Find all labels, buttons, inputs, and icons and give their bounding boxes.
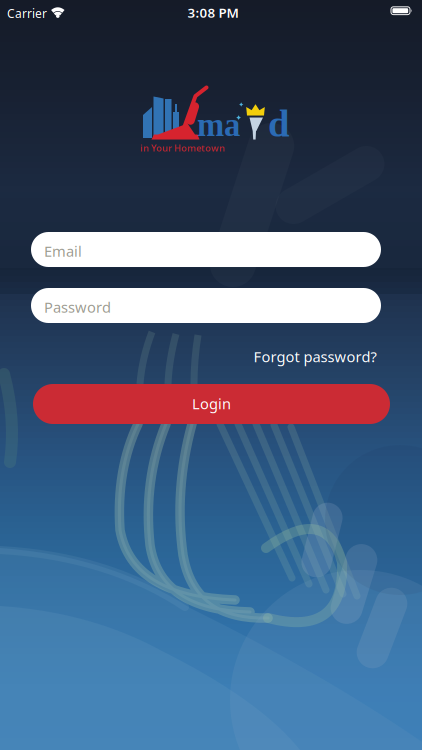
textField[interactable]: Email xyxy=(44,241,381,261)
button[interactable]: Login xyxy=(33,384,390,424)
staticText: Email xyxy=(44,241,82,261)
staticText: 3:08 PM xyxy=(187,4,238,21)
staticText: Password xyxy=(44,297,111,317)
textField[interactable]: Password xyxy=(44,297,381,317)
staticText: in Your Hometown xyxy=(140,142,225,154)
staticText: Forgot password? xyxy=(253,347,376,366)
staticText: d xyxy=(268,102,290,145)
staticText: ma xyxy=(197,107,240,143)
staticText: Login xyxy=(192,394,231,413)
button[interactable]: Forgot password? xyxy=(253,347,376,366)
staticText: Carrier xyxy=(7,5,47,21)
